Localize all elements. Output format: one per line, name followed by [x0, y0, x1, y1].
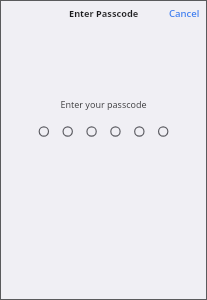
staticText: Enter Passcode	[69, 7, 139, 20]
button[interactable]: Passcode entry, 6 digits	[0, 126, 207, 137]
button[interactable]: Cancel	[161, 3, 207, 24]
staticText: Cancel	[169, 7, 200, 20]
staticText: Enter your passcode	[0, 98, 207, 110]
